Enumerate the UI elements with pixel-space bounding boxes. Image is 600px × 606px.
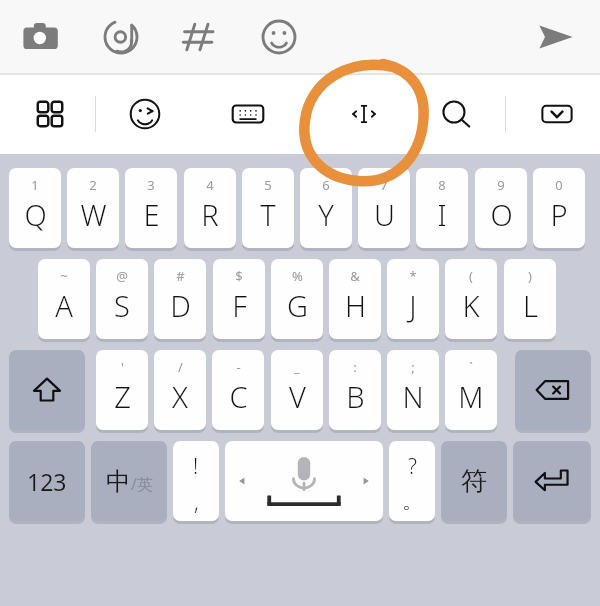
staticText: @ <box>116 267 128 285</box>
button[interactable]: % <box>271 259 323 339</box>
button[interactable]: 7 <box>358 168 410 248</box>
button[interactable]: - <box>212 350 264 430</box>
staticText: /英 <box>131 473 153 495</box>
staticText: H <box>345 286 366 325</box>
staticText: * <box>409 267 417 285</box>
button[interactable]: ; <box>387 350 439 430</box>
button[interactable]: Apps <box>26 90 74 138</box>
staticText: 123 <box>27 466 67 497</box>
button[interactable]: @ <box>96 259 148 339</box>
staticText: ` <box>469 358 473 376</box>
staticText: 2 <box>89 176 97 194</box>
button[interactable]: ) <box>504 259 556 339</box>
staticText: % <box>292 267 303 285</box>
staticText: ' <box>121 358 124 376</box>
button[interactable]: Move cursor <box>340 90 388 138</box>
button[interactable]: Space <box>225 441 383 521</box>
staticText: 4 <box>206 176 214 194</box>
staticText: B <box>346 377 365 416</box>
staticText: X <box>172 377 188 416</box>
staticText: S <box>114 286 130 325</box>
button[interactable]: Keyboard layout <box>224 90 272 138</box>
staticText: 中 <box>106 466 131 497</box>
staticText: ) <box>528 267 532 285</box>
staticText: K <box>462 286 480 325</box>
staticText: G <box>287 286 308 325</box>
staticText: $ <box>235 267 243 285</box>
button[interactable]: 2 <box>67 168 119 248</box>
staticText: 6 <box>322 176 330 194</box>
button[interactable]: Mention <box>94 10 148 64</box>
staticText: P <box>550 195 568 234</box>
staticText: ! <box>193 452 199 481</box>
button[interactable]: 8 <box>416 168 468 248</box>
button[interactable]: 1 <box>9 168 61 248</box>
staticText: L <box>523 286 538 325</box>
button[interactable]: & <box>329 259 381 339</box>
button[interactable]: : <box>329 350 381 430</box>
staticText: & <box>350 267 360 285</box>
staticText: O <box>490 195 513 234</box>
staticText: ; <box>411 358 415 376</box>
button[interactable]: * <box>387 259 439 339</box>
button[interactable]: ? <box>389 441 435 521</box>
button[interactable]: 9 <box>475 168 527 248</box>
staticText: T <box>260 195 276 234</box>
button[interactable]: ( <box>445 259 497 339</box>
staticText: ~ <box>60 267 68 285</box>
staticText: : <box>353 358 357 376</box>
staticText: 0 <box>555 176 563 194</box>
staticText: 8 <box>438 176 446 194</box>
staticText: C <box>229 377 248 416</box>
button[interactable]: Send <box>528 10 582 64</box>
button[interactable]: 中 <box>91 441 167 521</box>
button[interactable]: Stickers <box>121 90 169 138</box>
button[interactable]: Hashtag <box>172 10 226 64</box>
staticText: V <box>289 377 306 416</box>
button[interactable]: Camera <box>14 10 68 64</box>
staticText: 。 <box>402 488 423 514</box>
staticText: # <box>176 267 185 285</box>
staticText: D <box>170 286 191 325</box>
staticText: A <box>55 286 73 325</box>
staticText: ? <box>408 452 417 481</box>
button[interactable]: 6 <box>300 168 352 248</box>
button[interactable]: / <box>154 350 206 430</box>
button[interactable]: # <box>154 259 206 339</box>
button[interactable]: Hide keyboard <box>533 90 581 138</box>
button[interactable]: ~ <box>38 259 90 339</box>
button[interactable]: Emoji <box>252 10 306 64</box>
staticText: Y <box>318 195 334 234</box>
button[interactable]: Shift <box>9 350 85 430</box>
staticText: F <box>232 286 247 325</box>
staticText: 9 <box>497 176 505 194</box>
staticText: I <box>437 195 447 234</box>
staticText: / <box>178 358 183 376</box>
button[interactable]: ! <box>173 441 219 521</box>
staticText: W <box>80 195 107 234</box>
button[interactable]: Search <box>432 90 480 138</box>
staticText: N <box>402 377 424 416</box>
staticText: U <box>374 195 395 234</box>
button[interactable]: Backspace <box>515 350 591 430</box>
staticText: E <box>143 195 160 234</box>
button[interactable]: 符 <box>441 441 507 521</box>
staticText: , <box>194 488 199 517</box>
button[interactable]: $ <box>213 259 265 339</box>
staticText: 1 <box>31 176 39 194</box>
staticText: J <box>409 286 417 325</box>
button[interactable]: 0 <box>533 168 585 248</box>
button[interactable]: 4 <box>184 168 236 248</box>
staticText: M <box>458 377 484 416</box>
button[interactable]: ` <box>445 350 497 430</box>
staticText: ( <box>469 267 473 285</box>
staticText: 5 <box>264 176 272 194</box>
staticText: R <box>201 195 219 234</box>
button[interactable]: Enter <box>513 441 591 521</box>
button[interactable]: 3 <box>125 168 177 248</box>
button[interactable]: ' <box>96 350 148 430</box>
button[interactable]: 123 <box>9 441 85 521</box>
staticText: _ <box>294 358 300 376</box>
button[interactable]: _ <box>271 350 323 430</box>
button[interactable]: 5 <box>242 168 294 248</box>
